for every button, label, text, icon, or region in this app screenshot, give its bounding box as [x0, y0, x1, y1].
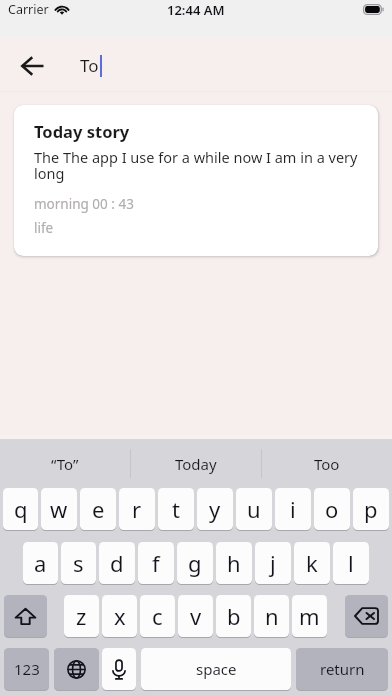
- other: Numbers and symbols: [4, 648, 49, 690]
- button[interactable]: w: [41, 488, 77, 530]
- staticText: The The app I use for a while now I am i…: [34, 147, 363, 184]
- staticText: l: [348, 548, 354, 578]
- staticText: t: [172, 494, 180, 524]
- staticText: o: [325, 494, 339, 524]
- button[interactable]: u: [236, 488, 272, 530]
- staticText: k: [306, 548, 318, 578]
- staticText: life: [34, 219, 54, 237]
- button[interactable]: [54, 648, 99, 690]
- button[interactable]: p: [353, 488, 389, 530]
- button[interactable]: m: [292, 595, 327, 637]
- staticText: Today story: [34, 120, 130, 142]
- staticText: Carrier: [8, 1, 49, 18]
- staticText: y: [209, 494, 221, 524]
- staticText: To: [80, 54, 99, 77]
- button[interactable]: Back: [11, 48, 53, 84]
- staticText: space: [196, 659, 237, 679]
- button[interactable]: s: [61, 542, 96, 584]
- staticText: j: [270, 548, 276, 578]
- button[interactable]: t: [158, 488, 194, 530]
- button[interactable]: o: [314, 488, 350, 530]
- staticText: Too: [314, 454, 340, 474]
- button[interactable]: [345, 595, 388, 637]
- button[interactable]: “To”: [0, 439, 130, 488]
- button[interactable]: i: [275, 488, 311, 530]
- staticText: b: [227, 601, 241, 631]
- button[interactable]: d: [99, 542, 135, 584]
- staticText: a: [34, 548, 47, 578]
- staticText: z: [76, 601, 87, 631]
- staticText: s: [73, 548, 84, 578]
- button[interactable]: 123: [4, 648, 49, 690]
- staticText: 123: [14, 659, 40, 679]
- button[interactable]: return: [296, 648, 388, 690]
- button[interactable]: b: [216, 595, 251, 637]
- staticText: Today: [175, 454, 217, 474]
- staticText: e: [92, 494, 105, 524]
- button[interactable]: z: [64, 595, 99, 637]
- staticText: v: [190, 601, 202, 631]
- staticText: c: [152, 601, 163, 631]
- other: Backspace: [345, 595, 388, 637]
- button[interactable]: r: [119, 488, 155, 530]
- button[interactable]: n: [254, 595, 289, 637]
- staticText: f: [152, 548, 160, 578]
- other: Shift: [4, 595, 47, 637]
- button[interactable]: y: [197, 488, 233, 530]
- button[interactable]: g: [177, 542, 213, 584]
- staticText: i: [290, 494, 296, 524]
- staticText: p: [364, 494, 378, 524]
- staticText: w: [50, 494, 68, 524]
- staticText: d: [110, 548, 124, 578]
- staticText: morning 00 : 43: [34, 195, 134, 213]
- staticText: m: [299, 601, 320, 631]
- button[interactable]: h: [216, 542, 252, 584]
- staticText: n: [265, 601, 279, 631]
- button[interactable]: j: [255, 542, 291, 584]
- button[interactable]: Today: [130, 439, 261, 488]
- button[interactable]: k: [294, 542, 330, 584]
- staticText: x: [114, 601, 126, 631]
- other: Switch keyboard language: [54, 648, 99, 690]
- button[interactable]: e: [80, 488, 116, 530]
- staticText: 12:44 AM: [167, 1, 225, 19]
- button[interactable]: Today story: [14, 105, 378, 256]
- button[interactable]: a: [23, 542, 58, 584]
- button[interactable]: x: [102, 595, 137, 637]
- other: Dictation: [102, 648, 136, 690]
- staticText: q: [14, 494, 28, 524]
- staticText: return: [320, 659, 365, 679]
- staticText: g: [188, 548, 202, 578]
- button[interactable]: [4, 595, 47, 637]
- staticText: r: [132, 494, 142, 524]
- button[interactable]: f: [138, 542, 174, 584]
- button[interactable]: q: [3, 488, 38, 530]
- button[interactable]: space: [141, 648, 291, 690]
- button[interactable]: c: [140, 595, 175, 637]
- button[interactable]: Too: [261, 439, 392, 488]
- button[interactable]: [102, 648, 136, 690]
- staticText: u: [247, 494, 261, 524]
- staticText: “To”: [51, 454, 79, 474]
- staticText: h: [227, 548, 241, 578]
- button[interactable]: v: [178, 595, 213, 637]
- button[interactable]: l: [333, 542, 369, 584]
